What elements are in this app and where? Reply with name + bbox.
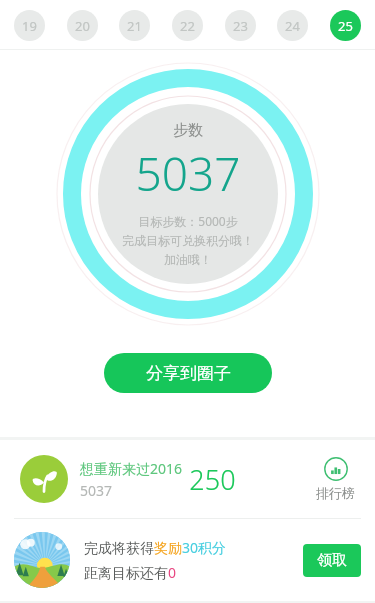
staticText: 领取 bbox=[317, 551, 347, 570]
button[interactable]: 排行榜 bbox=[312, 453, 359, 505]
button[interactable]: 21 bbox=[119, 10, 150, 41]
staticText: 19 bbox=[22, 17, 37, 35]
button[interactable]: 想重新来过2016 bbox=[0, 440, 375, 518]
staticText: 分享到圈子 bbox=[146, 363, 231, 384]
button[interactable]: 领取 bbox=[303, 544, 361, 577]
button[interactable]: 分享到圈子 bbox=[104, 353, 272, 393]
staticText: 目标步数：5000步 bbox=[138, 213, 238, 229]
staticText: 排行榜 bbox=[316, 485, 355, 501]
button[interactable]: 23 bbox=[225, 10, 256, 41]
button[interactable]: 24 bbox=[277, 10, 308, 41]
button[interactable]: 19 bbox=[14, 10, 45, 41]
staticText: 完成将获得奖励30积分 bbox=[84, 538, 227, 557]
staticText: 步数 bbox=[173, 121, 203, 140]
staticText: 25 bbox=[338, 17, 353, 35]
button[interactable]: 22 bbox=[172, 10, 203, 41]
staticText: 加油哦！ bbox=[164, 252, 212, 267]
staticText: 想重新来过2016 bbox=[80, 459, 183, 478]
staticText: 21 bbox=[127, 17, 142, 35]
staticText: 距离目标还有0 bbox=[84, 563, 177, 582]
staticText: 20 bbox=[75, 17, 90, 35]
button[interactable]: 完成将获得奖励30积分 bbox=[0, 519, 375, 601]
staticText: 5037 bbox=[80, 481, 113, 500]
button[interactable]: 25 bbox=[330, 10, 361, 41]
button[interactable]: 20 bbox=[67, 10, 98, 41]
staticText: 250 bbox=[189, 461, 236, 498]
staticText: 22 bbox=[180, 17, 195, 35]
staticText: 23 bbox=[233, 17, 248, 35]
staticText: 5037 bbox=[135, 142, 241, 205]
staticText: 完成目标可兑换积分哦！ bbox=[122, 233, 254, 248]
staticText: 24 bbox=[285, 17, 300, 35]
